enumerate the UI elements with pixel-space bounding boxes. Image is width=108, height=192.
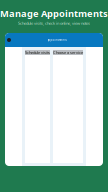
staticText: Schedule visits [25,50,50,55]
staticText: Choose a service [53,50,83,55]
staticText: Schedule visits, check in online, view n… [18,20,90,26]
staticText: Manage Appointments [0,7,108,19]
staticText: appointments [47,38,66,42]
